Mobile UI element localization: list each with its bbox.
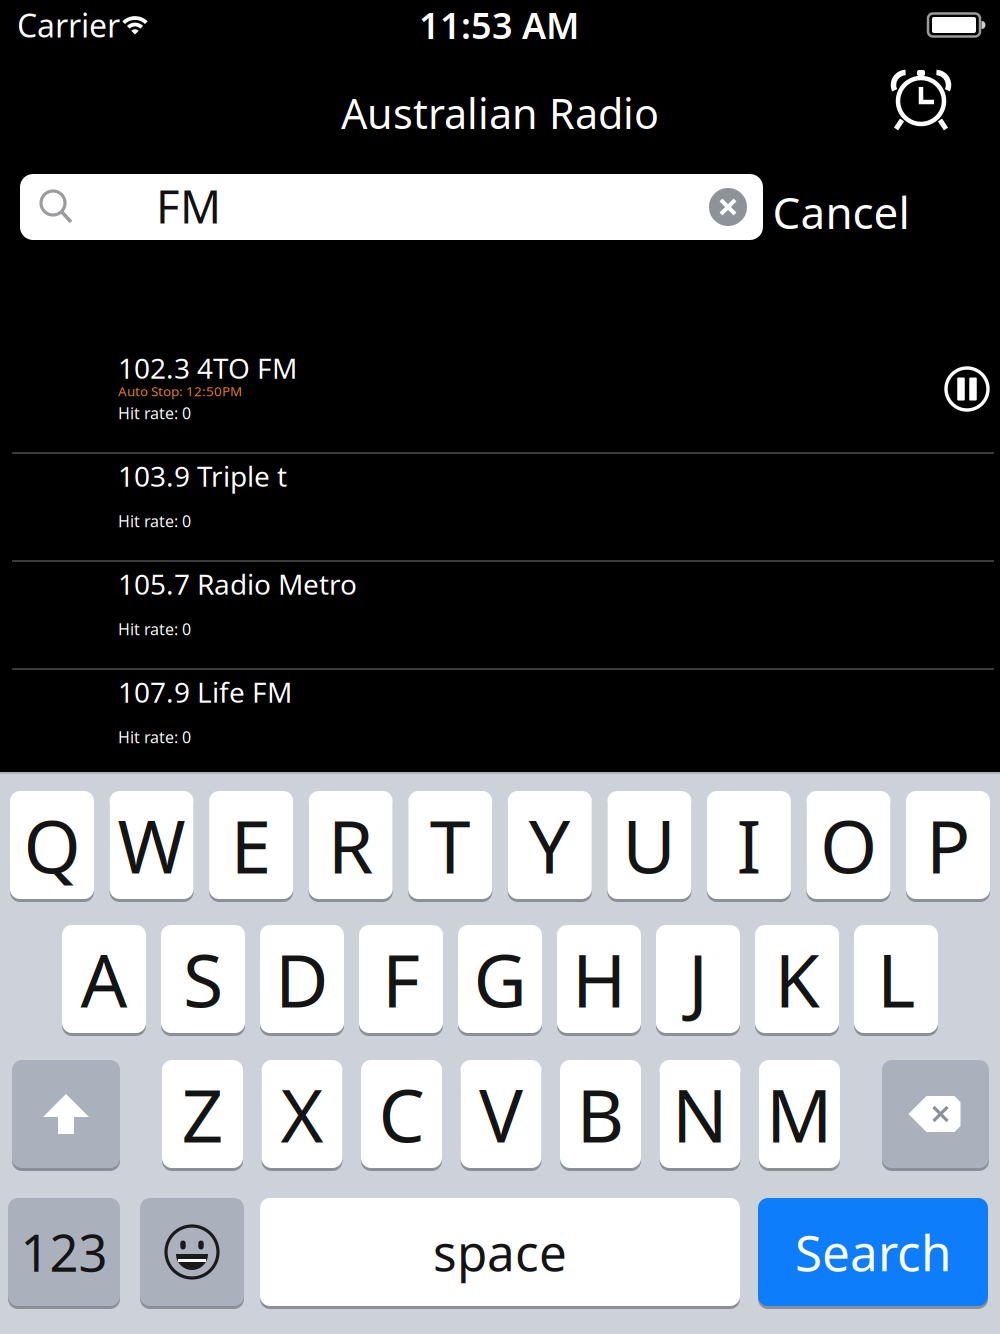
staticText: I — [736, 796, 761, 894]
button[interactable]: O — [806, 789, 890, 900]
staticText: O — [820, 796, 877, 894]
button[interactable]: Shift — [12, 1058, 120, 1169]
button[interactable]: Sleep timer — [890, 69, 952, 131]
staticText: Z — [181, 1065, 223, 1163]
staticText: Y — [529, 796, 571, 894]
button[interactable]: G — [458, 923, 542, 1034]
staticText: X — [280, 1065, 323, 1163]
button[interactable]: A — [62, 923, 146, 1034]
button[interactable]: Search — [758, 1196, 988, 1307]
button[interactable]: H — [557, 923, 641, 1034]
staticText: Australian Radio — [341, 86, 659, 140]
staticText: space — [433, 1219, 567, 1285]
staticText: Carrier — [17, 4, 120, 46]
button[interactable]: B — [560, 1058, 641, 1169]
staticText: C — [378, 1065, 424, 1163]
button[interactable]: 107.9 Life FM — [0, 669, 1000, 777]
button[interactable]: I — [707, 789, 791, 900]
staticText: Hit rate: 0 — [118, 510, 191, 532]
button[interactable]: Cancel — [772, 183, 909, 241]
staticText: V — [479, 1065, 523, 1163]
button[interactable]: S — [161, 923, 245, 1034]
staticText: R — [328, 796, 374, 894]
staticText: Hit rate: 0 — [118, 726, 191, 748]
button[interactable]: M — [759, 1058, 840, 1169]
button[interactable]: K — [755, 923, 839, 1034]
staticText: D — [275, 930, 329, 1028]
button[interactable]: Pause — [945, 367, 989, 411]
staticText: W — [118, 796, 186, 894]
button[interactable]: C — [361, 1058, 442, 1169]
staticText: Cancel — [772, 183, 909, 241]
button[interactable]: 103.9 Triple t — [0, 453, 1000, 561]
staticText: S — [183, 930, 223, 1028]
staticText: B — [576, 1065, 624, 1163]
button[interactable]: J — [656, 923, 740, 1034]
button[interactable]: FM — [20, 174, 763, 240]
staticText: N — [672, 1065, 728, 1163]
staticText: 123 — [20, 1218, 107, 1286]
button[interactable]: P — [906, 789, 990, 900]
staticText: Auto Stop: 12:50PM — [118, 382, 242, 400]
staticText: Q — [23, 796, 80, 894]
staticText: 103.9 Triple t — [118, 457, 287, 495]
button[interactable]: Z — [162, 1058, 243, 1169]
button[interactable]: 123 — [8, 1196, 120, 1307]
button[interactable]: Clear text — [709, 188, 747, 226]
staticText: L — [877, 930, 915, 1028]
button[interactable]: E — [209, 789, 293, 900]
button[interactable]: Delete — [882, 1058, 989, 1169]
staticText: Search — [795, 1219, 951, 1285]
button[interactable]: D — [260, 923, 344, 1034]
button[interactable]: 105.7 Radio Metro — [0, 561, 1000, 669]
button[interactable]: X — [261, 1058, 342, 1169]
button[interactable]: N — [659, 1058, 740, 1169]
button[interactable]: U — [607, 789, 691, 900]
staticText: Hit rate: 0 — [118, 618, 191, 640]
button[interactable]: Y — [508, 789, 592, 900]
button[interactable]: L — [854, 923, 938, 1034]
staticText: 11:53 AM — [419, 1, 579, 49]
staticText: P — [926, 796, 970, 894]
button[interactable]: W — [110, 789, 194, 900]
button[interactable]: Emoji — [140, 1196, 244, 1307]
staticText: A — [80, 930, 127, 1028]
staticText: E — [231, 796, 272, 894]
staticText: FM — [156, 176, 221, 236]
button[interactable]: R — [309, 789, 393, 900]
button[interactable]: V — [460, 1058, 541, 1169]
staticText: 105.7 Radio Metro — [118, 565, 357, 603]
staticText: G — [473, 930, 526, 1028]
staticText: Hit rate: 0 — [118, 402, 191, 424]
button[interactable]: Q — [10, 789, 94, 900]
button[interactable]: 102.3 4TO FM — [0, 345, 1000, 453]
staticText: K — [774, 930, 819, 1028]
button[interactable]: space — [260, 1196, 740, 1307]
staticText: H — [572, 930, 626, 1028]
button[interactable]: T — [408, 789, 492, 900]
button[interactable]: F — [359, 923, 443, 1034]
staticText: F — [382, 930, 420, 1028]
staticText: J — [688, 930, 708, 1028]
staticText: 107.9 Life FM — [118, 673, 292, 711]
staticText: U — [622, 796, 676, 894]
staticText: 102.3 4TO FM — [118, 349, 297, 387]
staticText: T — [430, 796, 471, 894]
staticText: M — [766, 1065, 833, 1163]
